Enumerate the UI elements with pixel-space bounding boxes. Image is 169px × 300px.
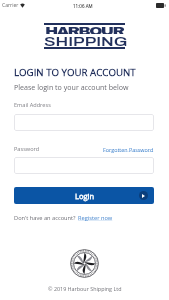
button[interactable]: Login (14, 187, 154, 204)
staticText: Don't have an account? (14, 214, 78, 222)
button[interactable]: Forgotten Password (103, 146, 154, 153)
button[interactable]: Password field (14, 157, 154, 174)
staticText: LOGIN TO YOUR ACCOUNT (14, 66, 136, 79)
staticText: Password (14, 145, 40, 153)
staticText: SHIPPING (44, 35, 127, 46)
staticText: Please login to your account below (14, 82, 129, 92)
staticText: Carrier (2, 2, 19, 9)
staticText: © 2019 Harbour Shipping Ltd (48, 285, 122, 292)
button[interactable]: Register now (78, 214, 113, 222)
staticText: 11:06 AM (73, 3, 93, 9)
staticText: Email Address (14, 101, 51, 109)
staticText: HARBOUR (45, 25, 125, 34)
staticText: Login (75, 191, 94, 201)
button[interactable]: Email address field (14, 114, 154, 131)
